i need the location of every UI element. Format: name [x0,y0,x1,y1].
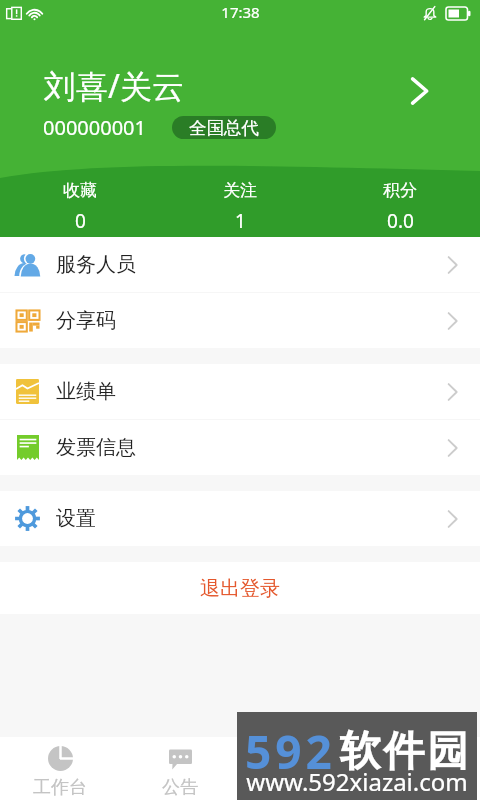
button[interactable]: Account details [395,67,443,115]
staticText: 设置 [56,506,96,531]
staticText: 业绩单 [56,379,116,404]
staticText: 592 [245,720,336,783]
staticText: 全国总代 [189,117,259,139]
staticText: 0 [75,208,86,234]
button[interactable]: 我的 [360,737,480,800]
button[interactable]: 设置 [0,491,480,546]
staticText: 公告 [162,776,198,799]
button[interactable]: 全国总代 [172,116,276,139]
staticText: 积分 [383,180,417,201]
button[interactable]: 退出登录 [0,562,480,614]
button[interactable]: 积分 [320,178,480,234]
staticText: www.592xiazai.com [246,765,468,798]
staticText: 关注 [223,180,257,201]
button[interactable]: 发票信息 [0,420,480,475]
staticText: 刘喜/关云 [44,64,184,108]
staticText: 软件园 [338,726,470,778]
button[interactable]: 关注 [160,178,320,234]
staticText: 000000001 [43,114,146,141]
staticText: 1 [235,208,246,234]
staticText: 0.0 [387,208,414,234]
button[interactable]: 分享码 [0,293,480,348]
button[interactable]: 工作台 [0,737,120,800]
staticText: 17:38 [221,2,260,22]
staticText: 服务人员 [56,252,136,277]
staticText: 分享码 [56,308,116,333]
staticText: 消息 [282,776,318,799]
staticText: 收藏 [63,180,97,201]
button[interactable]: 收藏 [0,178,160,234]
staticText: 退出登录 [200,576,280,601]
button[interactable]: 公告 [120,737,240,800]
button[interactable]: 消息 [240,737,360,800]
staticText: 工作台 [33,776,87,799]
button[interactable]: 服务人员 [0,237,480,292]
staticText: 发票信息 [56,435,136,460]
button[interactable]: 业绩单 [0,364,480,419]
staticText: 我的 [402,776,438,799]
